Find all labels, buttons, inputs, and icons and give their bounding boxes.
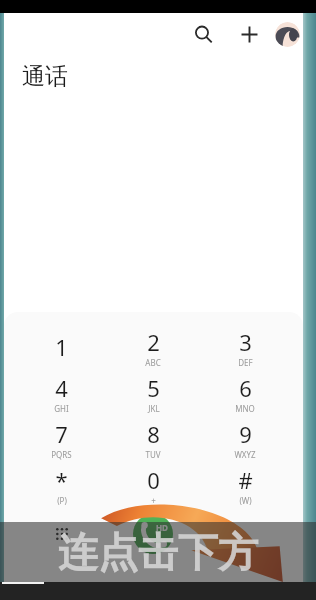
staticText: 7: [55, 419, 68, 449]
staticText: +: [151, 495, 156, 506]
staticText: DEF: [238, 357, 253, 368]
button[interactable]: 1: [16, 324, 107, 370]
staticText: ABC: [145, 357, 161, 368]
staticText: WXYZ: [234, 449, 256, 460]
staticText: 9: [239, 419, 252, 449]
button[interactable]: 6: [199, 370, 291, 416]
button[interactable]: 8: [107, 416, 199, 462]
staticText: PQRS: [51, 449, 72, 460]
staticText: (P): [57, 495, 67, 506]
staticText: 6: [239, 373, 252, 403]
staticText: HD: [156, 522, 168, 533]
button[interactable]: Call: [133, 514, 173, 554]
staticText: 0: [147, 465, 160, 495]
button[interactable]: Hide keypad: [16, 508, 107, 560]
staticText: (W): [239, 495, 252, 506]
staticText: 2: [147, 327, 160, 357]
staticText: TUV: [145, 449, 161, 460]
button[interactable]: 0: [107, 462, 199, 508]
staticText: 8: [147, 419, 160, 449]
button[interactable]: Profile: [275, 22, 300, 47]
staticText: 连点击下方: [58, 527, 258, 577]
staticText: 5: [147, 373, 160, 403]
button[interactable]: 7: [16, 416, 107, 462]
staticText: 1: [55, 332, 68, 362]
staticText: 4: [55, 373, 68, 403]
button[interactable]: 2: [107, 324, 199, 370]
button[interactable]: *: [16, 462, 107, 508]
staticText: #: [238, 465, 253, 495]
button[interactable]: #: [199, 462, 291, 508]
button[interactable]: 9: [199, 416, 291, 462]
staticText: JKL: [148, 403, 160, 414]
button[interactable]: Add: [231, 16, 267, 52]
button[interactable]: Search: [185, 16, 221, 52]
staticText: GHI: [54, 403, 69, 414]
staticText: MNO: [235, 403, 255, 414]
button[interactable]: 5: [107, 370, 199, 416]
button[interactable]: 4: [16, 370, 107, 416]
staticText: 3: [239, 327, 252, 357]
staticText: *: [55, 465, 68, 495]
button[interactable]: 3: [199, 324, 291, 370]
staticText: 通话: [22, 62, 68, 91]
